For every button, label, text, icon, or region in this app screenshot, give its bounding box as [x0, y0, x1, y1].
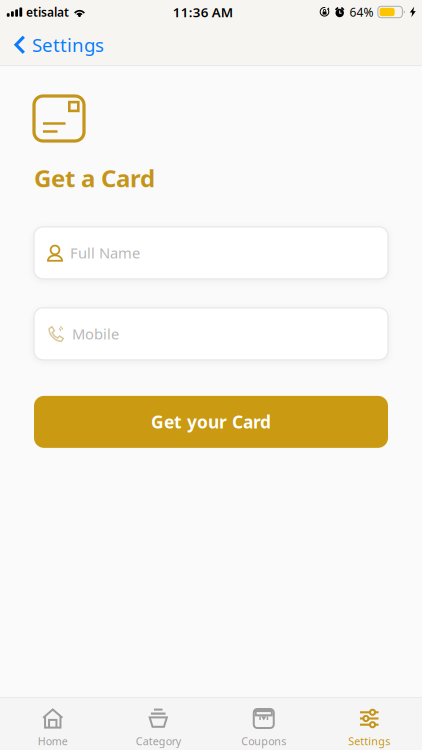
staticText: 11:36 AM [173, 3, 233, 21]
button[interactable]: Category [105, 698, 211, 750]
staticText: Category [136, 734, 181, 748]
button[interactable]: Get your Card [34, 396, 388, 448]
staticText: Settings [32, 32, 104, 57]
staticText: Mobile [72, 324, 119, 344]
staticText: etisalat [26, 4, 69, 20]
staticText: Home [38, 734, 68, 748]
staticText: Settings [348, 734, 390, 748]
staticText: 64% [349, 4, 373, 20]
button[interactable]: Settings [316, 698, 422, 750]
button[interactable]: Coupons [211, 698, 316, 750]
button[interactable]: Home [0, 698, 105, 750]
button[interactable]: Settings [0, 24, 114, 65]
button[interactable]: Mobile [34, 308, 388, 360]
staticText: Full Name [70, 243, 140, 263]
staticText: Get your Card [151, 410, 271, 433]
button[interactable]: Full Name [34, 227, 388, 279]
staticText: Coupons [241, 734, 286, 748]
staticText: Get a Card [34, 162, 155, 194]
